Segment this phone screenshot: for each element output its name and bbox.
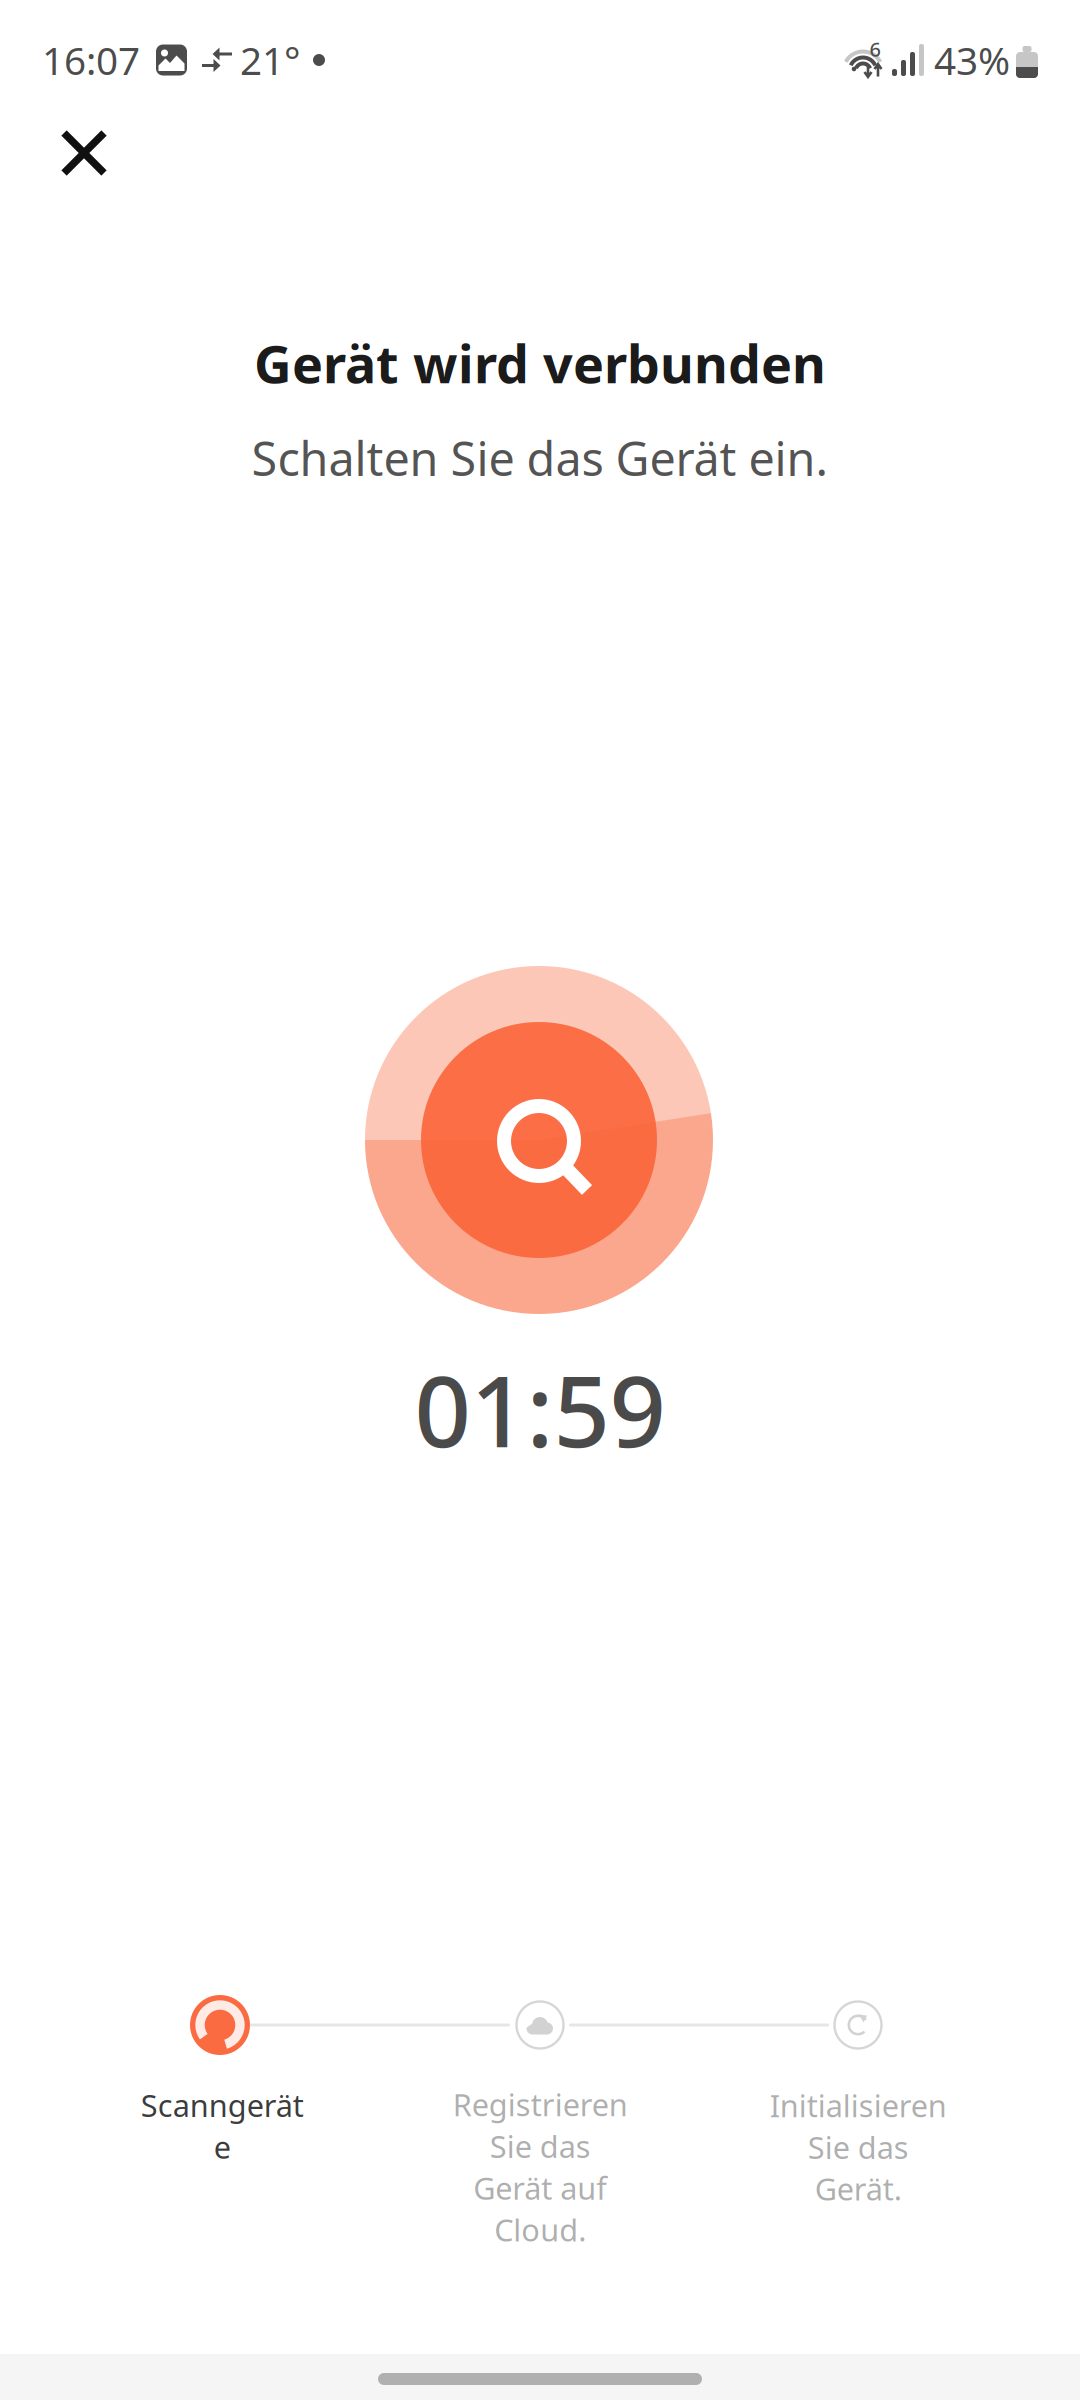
staticText: Scanngerät e bbox=[140, 2085, 303, 2167]
staticText: 01:59 bbox=[414, 1343, 665, 1474]
staticText: 6 bbox=[869, 36, 880, 62]
button[interactable]: Close bbox=[36, 105, 132, 201]
staticText: Initialisieren Sie das Gerät. bbox=[769, 2085, 946, 2209]
staticText: Schalten Sie das Gerät ein. bbox=[251, 427, 828, 489]
staticText: Registrieren Sie das Gerät auf Cloud. bbox=[452, 2084, 627, 2250]
staticText: 16:07 bbox=[42, 34, 140, 86]
staticText: 43% bbox=[934, 34, 1010, 86]
staticText: Gerät wird verbunden bbox=[254, 328, 826, 398]
staticText: 21° bbox=[240, 34, 301, 86]
